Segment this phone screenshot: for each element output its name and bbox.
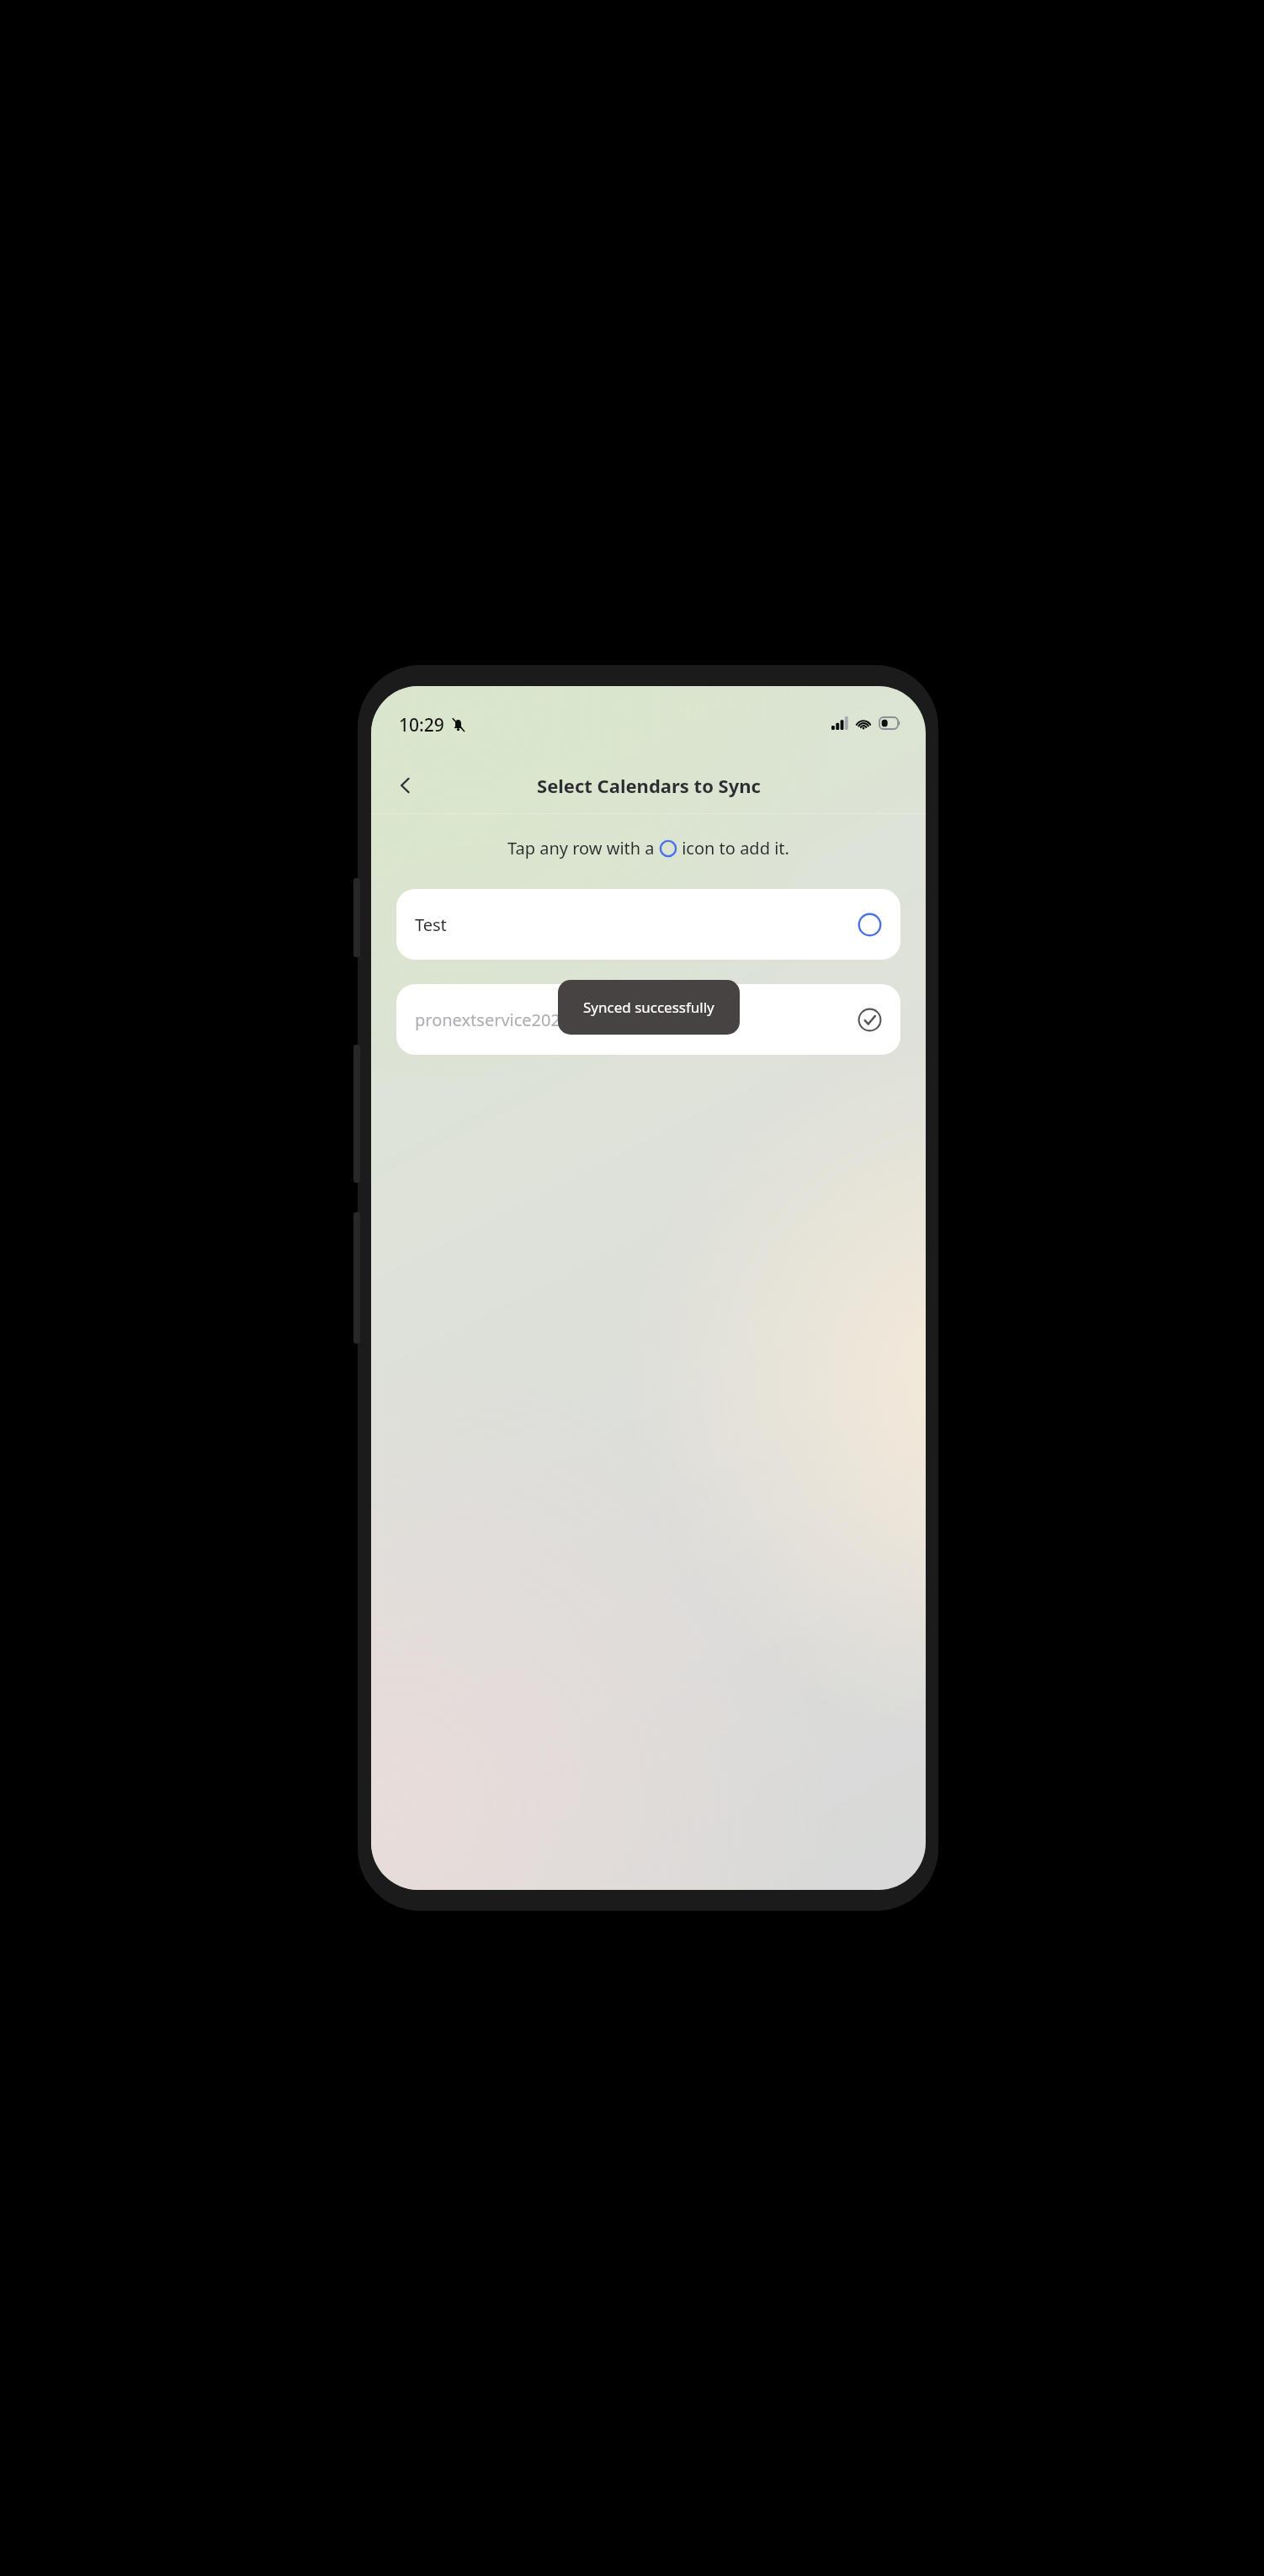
staticText: 10:29 <box>399 713 444 737</box>
staticText: Synced successfully <box>583 998 714 1017</box>
button[interactable]: pronextservice2024@gmail.com <box>396 984 900 1055</box>
button[interactable]: Back <box>383 763 428 808</box>
staticText: pronextservice2024@gmail.com <box>415 1009 668 1031</box>
button[interactable]: Test <box>396 889 900 960</box>
staticText: Tap any row with a <box>507 837 659 860</box>
staticText: Test <box>415 913 447 936</box>
staticText: icon to add it. <box>677 837 789 860</box>
button[interactable]: Synced successfully <box>558 980 740 1035</box>
staticText: Select Calendars to Sync <box>537 773 761 798</box>
